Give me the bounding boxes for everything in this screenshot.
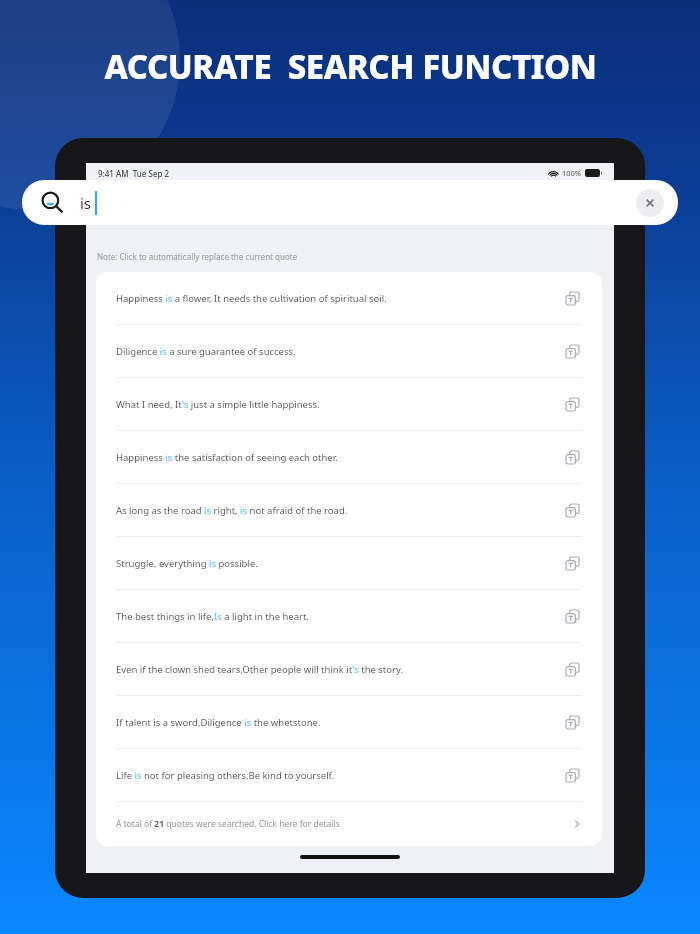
staticText: Happiness is the satisfaction of seeing … xyxy=(116,451,562,464)
staticText: Struggle, everything is possible. xyxy=(116,557,562,570)
staticText: 100% xyxy=(562,168,582,178)
staticText: is xyxy=(80,193,92,213)
button[interactable]: is xyxy=(22,180,678,225)
staticText: ACCURATE SEARCH FUNCTION xyxy=(104,44,597,89)
staticText: Happiness is a flower, It needs the cult… xyxy=(116,292,562,305)
staticText: What I need, It's just a simple little h… xyxy=(116,398,562,411)
button[interactable]: Copy quote xyxy=(562,341,582,361)
button[interactable]: Happiness is a flower, It needs the cult… xyxy=(96,272,602,324)
button[interactable]: A total of 21 quotes were searched. Clic… xyxy=(96,802,602,846)
staticText: Note: Click to automatically replace the… xyxy=(97,251,298,262)
staticText: A total of 21 quotes were searched. Clic… xyxy=(116,818,572,830)
button[interactable]: Copy quote xyxy=(562,447,582,467)
button[interactable]: What I need, It's just a simple little h… xyxy=(96,378,602,430)
staticText: If talent is a sword,Diligence is the wh… xyxy=(116,716,562,729)
staticText: Life is not for pleasing others,Be kind … xyxy=(116,769,562,782)
button[interactable]: Copy quote xyxy=(562,394,582,414)
button[interactable]: As long as the road is right, is not afr… xyxy=(96,484,602,536)
button[interactable]: Copy quote xyxy=(562,712,582,732)
button[interactable]: Clear search xyxy=(636,189,664,217)
staticText: The best things in life,Is a light in th… xyxy=(116,610,562,623)
button[interactable]: Diligence is a sure guarantee of success… xyxy=(96,325,602,377)
button[interactable]: Even if the clown shed tears,Other peopl… xyxy=(96,643,602,695)
button[interactable]: Copy quote xyxy=(562,288,582,308)
staticText: As long as the road is right, is not afr… xyxy=(116,504,562,517)
staticText: Even if the clown shed tears,Other peopl… xyxy=(116,663,562,676)
button[interactable]: Copy quote xyxy=(562,553,582,573)
staticText: Diligence is a sure guarantee of success… xyxy=(116,345,562,358)
button[interactable]: If talent is a sword,Diligence is the wh… xyxy=(96,696,602,748)
staticText: 9:41 AM Tue Sep 2 xyxy=(98,168,170,179)
button[interactable]: The best things in life,Is a light in th… xyxy=(96,590,602,642)
button[interactable]: Life is not for pleasing others,Be kind … xyxy=(96,749,602,801)
button[interactable]: Copy quote xyxy=(562,606,582,626)
button[interactable]: Happiness is the satisfaction of seeing … xyxy=(96,431,602,483)
button[interactable]: Struggle, everything is possible. xyxy=(96,537,602,589)
button[interactable]: Copy quote xyxy=(562,659,582,679)
button[interactable]: Copy quote xyxy=(562,765,582,785)
button[interactable]: Copy quote xyxy=(562,500,582,520)
